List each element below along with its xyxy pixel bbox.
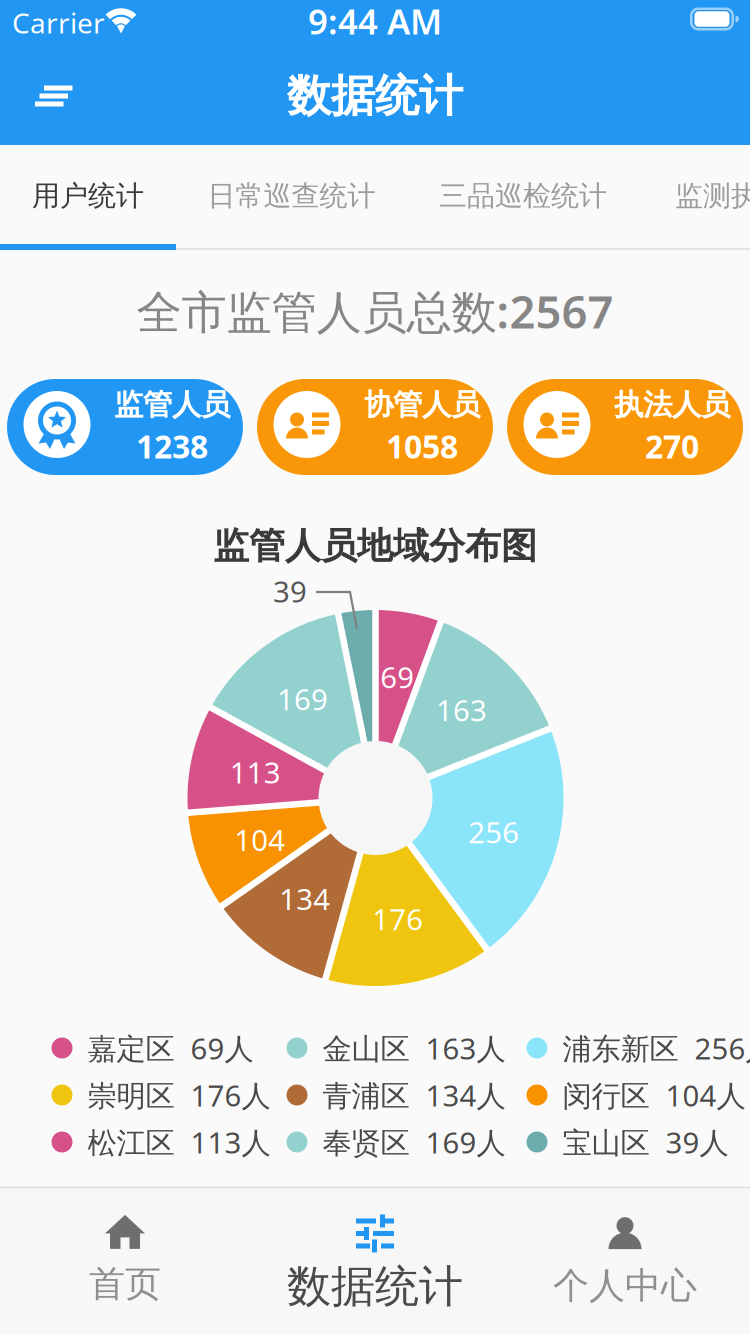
staticText: 256 bbox=[468, 812, 519, 851]
staticText: 三品巡检统计 bbox=[439, 179, 607, 213]
staticText: 163 bbox=[436, 690, 487, 729]
button[interactable]: 监管人员 bbox=[7, 379, 243, 475]
button[interactable]: 数据统计 bbox=[250, 1194, 500, 1334]
staticText: 270 bbox=[645, 425, 699, 467]
staticText: 134 bbox=[279, 879, 330, 918]
staticText: 全市监管人员总数:2567 bbox=[136, 281, 613, 341]
staticText: 闵行区 104人 bbox=[562, 1075, 745, 1114]
button[interactable] bbox=[26, 74, 90, 118]
button[interactable]: 日常巡查统计 bbox=[179, 147, 404, 245]
button[interactable]: 首页 bbox=[0, 1190, 250, 1330]
staticText: 日常巡查统计 bbox=[207, 179, 375, 213]
staticText: 69 bbox=[380, 657, 414, 696]
button[interactable]: 协管人员 bbox=[257, 379, 493, 475]
button[interactable]: 个人中心 bbox=[500, 1192, 750, 1332]
staticText: 监管人员地域分布图 bbox=[213, 524, 537, 568]
staticText: 宝山区 39人 bbox=[562, 1122, 728, 1161]
button[interactable]: 用户统计 bbox=[0, 147, 176, 245]
staticText: 104 bbox=[234, 820, 285, 859]
staticText: 首页 bbox=[89, 1262, 161, 1306]
staticText: 个人中心 bbox=[553, 1264, 697, 1308]
staticText: 青浦区 134人 bbox=[322, 1075, 505, 1114]
button[interactable]: 三品巡检统计 bbox=[410, 147, 635, 245]
staticText: 奉贤区 169人 bbox=[322, 1122, 505, 1161]
staticText: 浦东新区 256人 bbox=[562, 1028, 750, 1067]
staticText: 监测执法统计 bbox=[675, 179, 750, 213]
staticText: 数据统计 bbox=[287, 69, 463, 123]
staticText: 9:44 AM bbox=[308, 0, 442, 44]
staticText: 协管人员 bbox=[364, 387, 480, 423]
button[interactable]: 监测执法统计 bbox=[646, 147, 750, 245]
staticText: 用户统计 bbox=[32, 179, 144, 213]
staticText: 嘉定区 69人 bbox=[87, 1028, 253, 1067]
staticText: 执法人员 bbox=[614, 387, 730, 423]
staticText: 崇明区 176人 bbox=[87, 1075, 270, 1114]
staticText: 监管人员 bbox=[114, 387, 230, 423]
staticText: 1238 bbox=[136, 425, 208, 467]
staticText: 39 bbox=[273, 571, 307, 610]
staticText: 金山区 163人 bbox=[322, 1028, 505, 1067]
staticText: 数据统计 bbox=[287, 1259, 463, 1313]
staticText: 169 bbox=[277, 679, 328, 718]
button[interactable]: 执法人员 bbox=[507, 379, 743, 475]
staticText: 松江区 113人 bbox=[87, 1122, 270, 1161]
staticText: 1058 bbox=[386, 425, 458, 467]
staticText: 113 bbox=[230, 753, 281, 792]
staticText: Carrier bbox=[12, 4, 105, 41]
staticText: 176 bbox=[372, 899, 423, 938]
